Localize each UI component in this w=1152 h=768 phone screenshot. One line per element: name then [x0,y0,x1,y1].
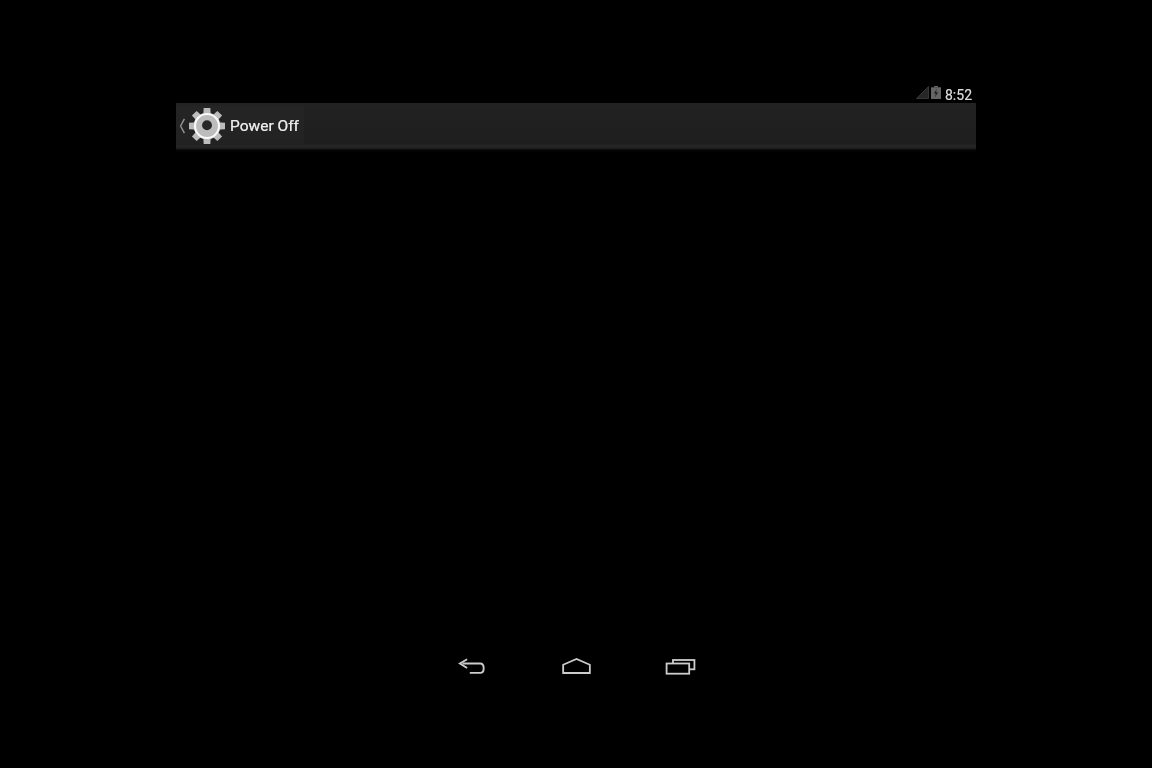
button[interactable]: Back [438,643,506,689]
button[interactable]: Navigate up [176,106,304,144]
staticText: Power Off [230,117,299,135]
button[interactable]: Home [542,643,610,689]
staticText: 8:52 [945,87,972,103]
button[interactable]: Recent apps [646,643,714,689]
